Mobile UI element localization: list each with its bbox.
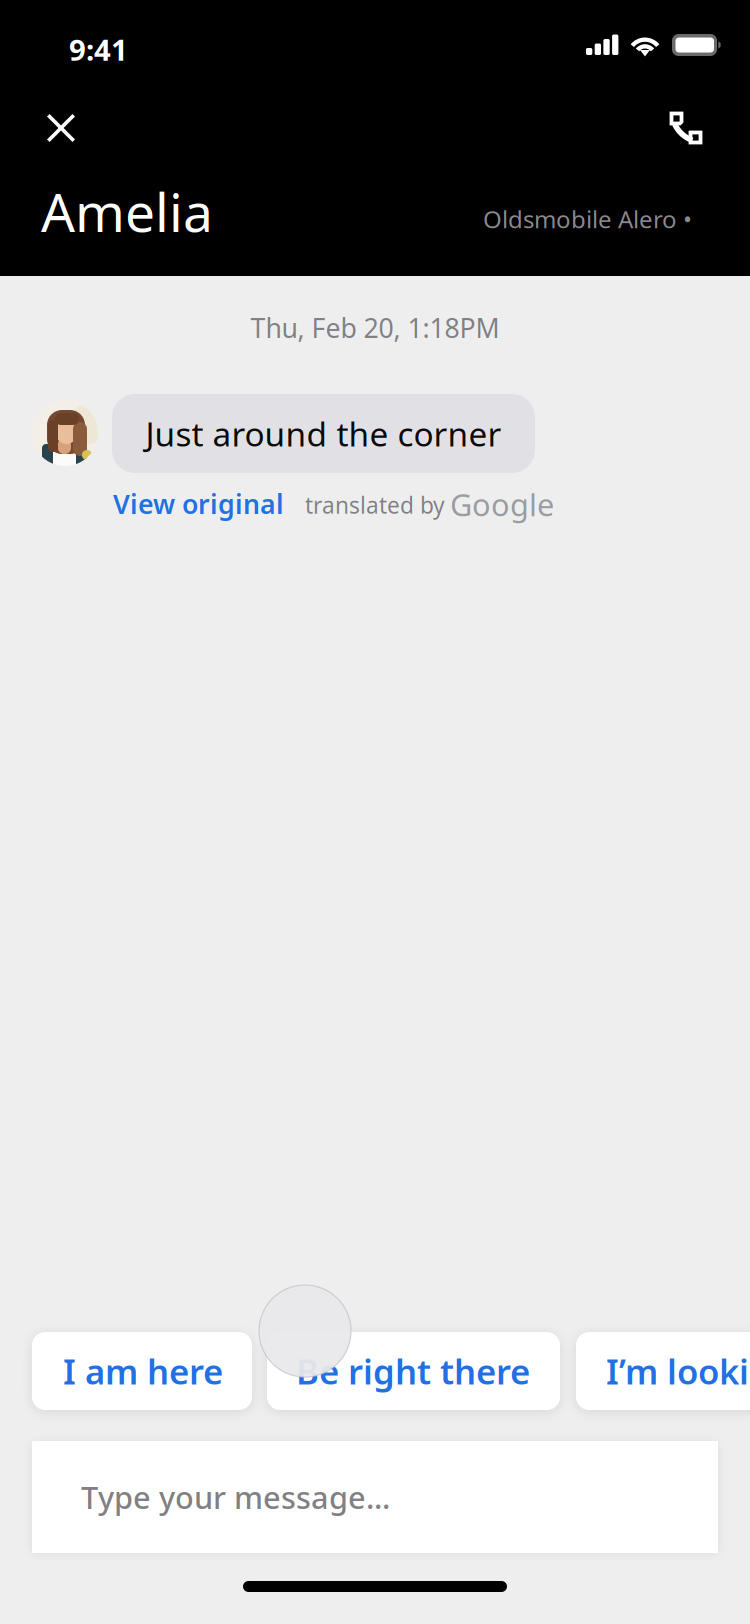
staticText: Thu, Feb 20, 1:18PM	[250, 310, 499, 345]
staticText: I am here	[63, 1348, 223, 1394]
button[interactable]: I’m looking	[576, 1332, 750, 1410]
button[interactable]: Close	[30, 97, 92, 159]
staticText: I’m looking	[606, 1348, 750, 1394]
staticText: Amelia	[41, 176, 213, 247]
button[interactable]: View original	[113, 486, 284, 521]
staticText: Google	[450, 484, 554, 525]
button[interactable]: Be right there	[267, 1332, 560, 1410]
staticText: View original	[113, 486, 284, 521]
staticText: translated by	[305, 490, 445, 520]
staticText: Just around the corner	[145, 411, 501, 456]
staticText: 9:41	[69, 30, 128, 69]
staticText: Oldsmobile Alero •	[483, 203, 692, 235]
button[interactable]: Call	[655, 97, 717, 159]
staticText: Type your message...	[81, 1477, 390, 1517]
button[interactable]: Type your message...	[32, 1441, 718, 1553]
staticText: Be right there	[296, 1348, 530, 1394]
button[interactable]: I am here	[32, 1332, 252, 1410]
